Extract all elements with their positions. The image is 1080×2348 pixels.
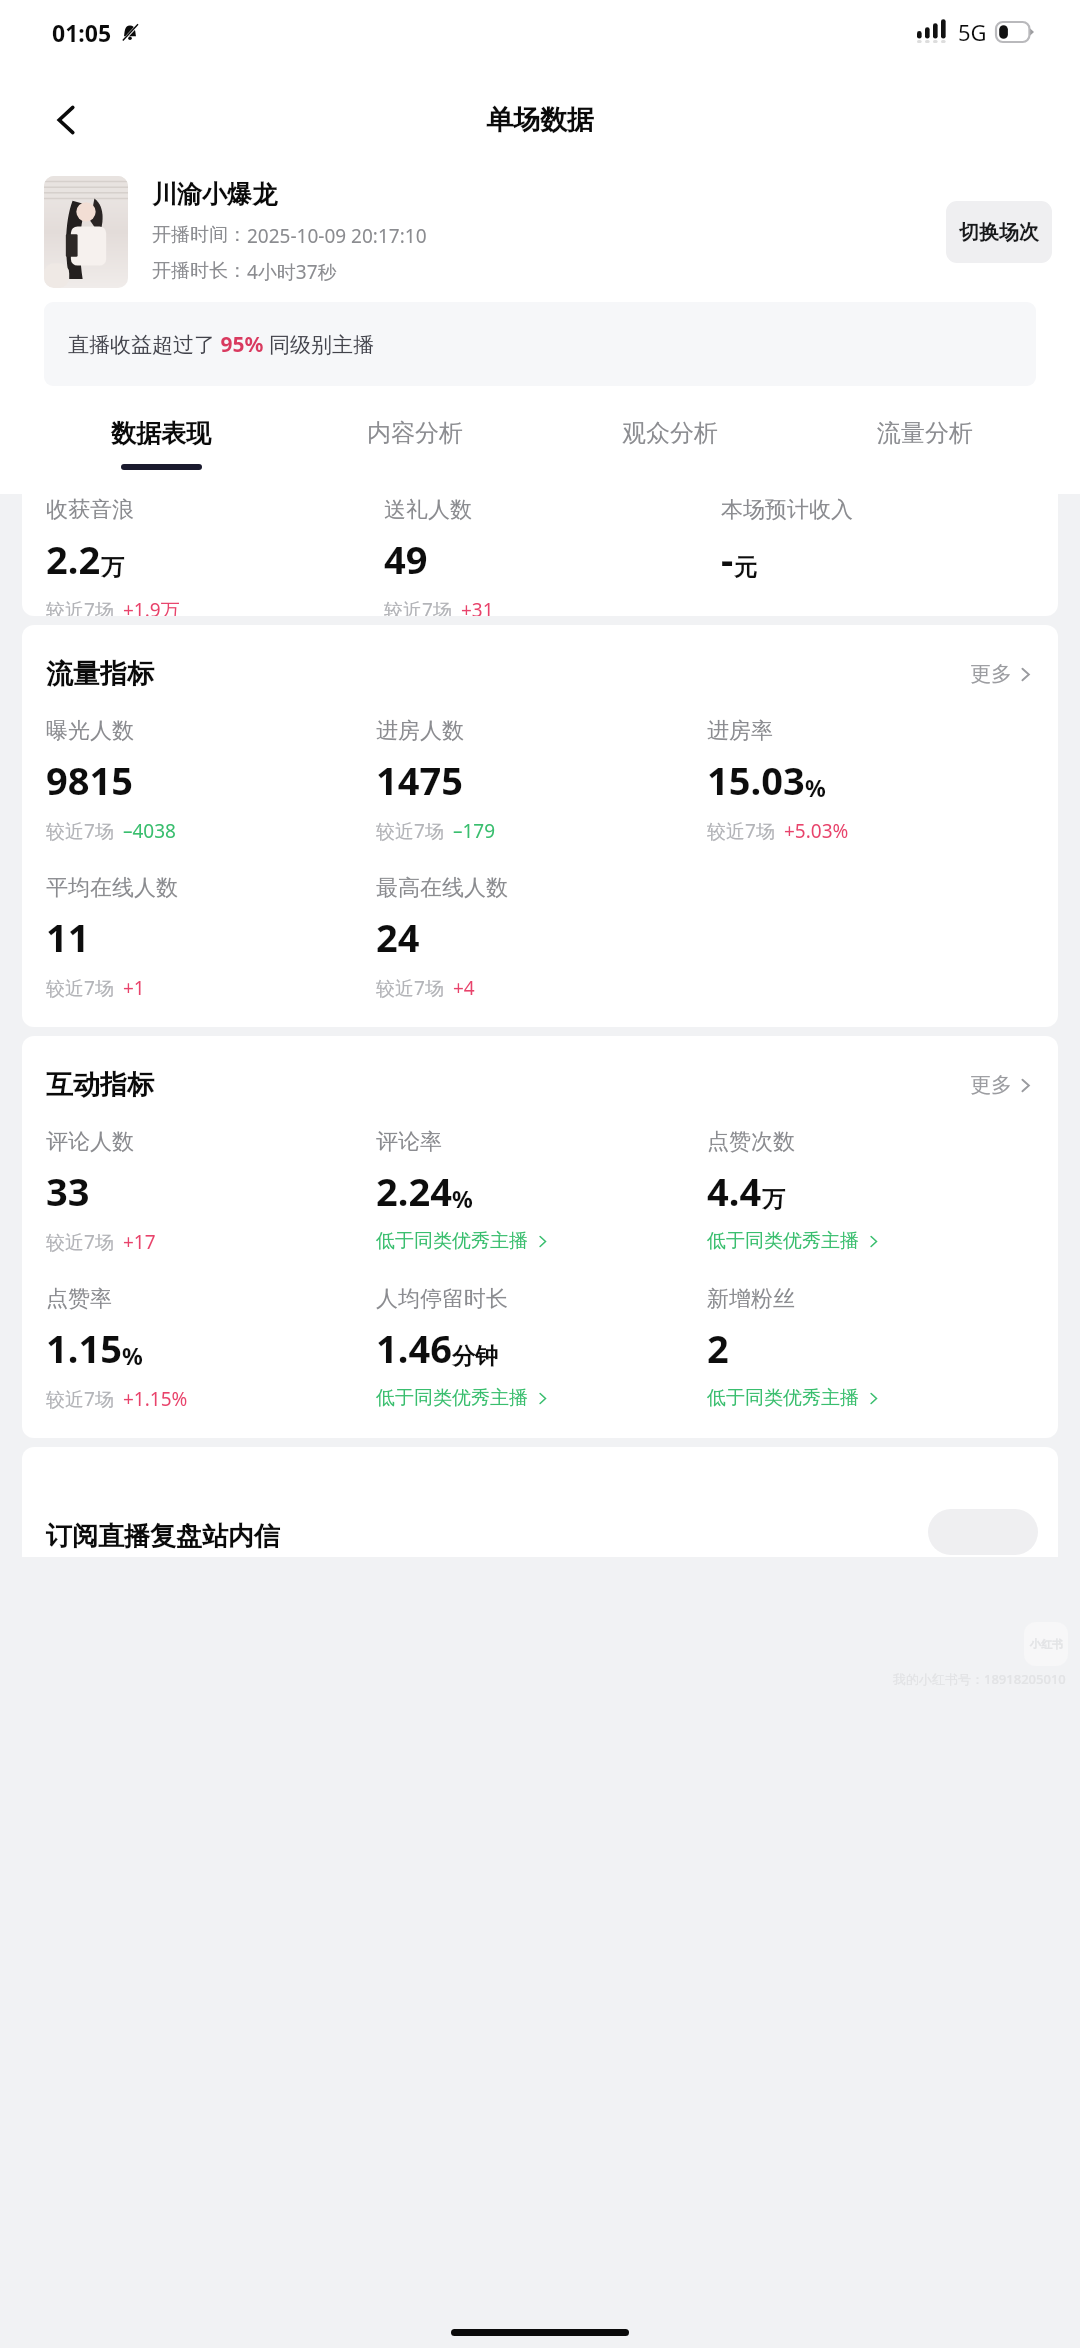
staticText: +4 bbox=[453, 975, 475, 1001]
staticText: 本场预计收入 bbox=[721, 496, 853, 524]
button[interactable]: Avatar bbox=[44, 176, 128, 288]
staticText: 较近7场 bbox=[384, 597, 452, 616]
button[interactable]: 本场预计收入 bbox=[721, 496, 1058, 616]
staticText: 较近7场 bbox=[46, 818, 114, 844]
staticText: +1.9万 bbox=[123, 597, 180, 616]
staticText: +5.03% bbox=[784, 818, 849, 844]
staticText: 点赞次数 bbox=[707, 1128, 795, 1156]
staticText: 评论率 bbox=[376, 1128, 442, 1156]
staticText: +31 bbox=[461, 597, 494, 616]
staticText: 川渝小爆龙 bbox=[152, 179, 277, 210]
staticText: 2.2 bbox=[46, 533, 101, 585]
staticText: 观众分析 bbox=[622, 418, 718, 448]
staticText: 5G bbox=[958, 17, 987, 47]
staticText: 内容分析 bbox=[367, 418, 463, 448]
button[interactable]: 切换场次 bbox=[946, 201, 1052, 263]
staticText: 49 bbox=[384, 533, 428, 585]
staticText: 4.4 bbox=[707, 1165, 762, 1217]
button[interactable]: 最高在线人数 bbox=[376, 874, 707, 1001]
button[interactable]: 进房率 bbox=[707, 717, 1038, 844]
staticText: +1 bbox=[123, 975, 145, 1001]
button[interactable]: 流量分析 bbox=[797, 410, 1052, 494]
staticText: - bbox=[721, 533, 734, 585]
staticText: 95% bbox=[215, 330, 269, 359]
button[interactable]: 点赞率 bbox=[46, 1285, 376, 1412]
staticText: 1475 bbox=[376, 754, 463, 806]
staticText: 较近7场 bbox=[376, 975, 444, 1001]
staticText: 较近7场 bbox=[376, 818, 444, 844]
staticText: 1.15 bbox=[46, 1322, 122, 1374]
staticText: 11 bbox=[46, 911, 90, 963]
staticText: 小红书 bbox=[1030, 1637, 1063, 1651]
staticText: 4小时37秒 bbox=[247, 259, 337, 285]
button[interactable]: 评论率 bbox=[376, 1128, 707, 1253]
staticText: 平均在线人数 bbox=[46, 874, 178, 902]
staticText: 进房率 bbox=[707, 717, 773, 745]
staticText: 15.03 bbox=[707, 754, 805, 806]
staticText: 互动指标 bbox=[46, 1068, 154, 1102]
staticText: 流量分析 bbox=[877, 418, 973, 448]
button[interactable]: 进房人数 bbox=[376, 717, 707, 844]
staticText: 1.46 bbox=[376, 1322, 452, 1374]
button[interactable]: 平均在线人数 bbox=[46, 874, 376, 1001]
staticText: 元 bbox=[734, 553, 757, 582]
staticText: 较近7场 bbox=[46, 597, 114, 616]
staticText: 01:05 bbox=[52, 17, 112, 48]
staticText: 2 bbox=[707, 1322, 729, 1374]
staticText: 9815 bbox=[46, 754, 133, 806]
staticText: 点赞率 bbox=[46, 1285, 112, 1313]
staticText: 开播时间： bbox=[152, 223, 247, 247]
staticText: % bbox=[122, 1340, 143, 1371]
staticText: 较近7场 bbox=[46, 1386, 114, 1412]
button[interactable]: 人均停留时长 bbox=[376, 1285, 707, 1410]
button[interactable]: 送礼人数 bbox=[384, 496, 721, 616]
staticText: –179 bbox=[453, 818, 496, 844]
staticText: 同级别主播 bbox=[269, 332, 374, 358]
staticText: 较近7场 bbox=[707, 818, 775, 844]
staticText: 万 bbox=[101, 553, 124, 582]
staticText: 流量指标 bbox=[46, 657, 154, 691]
staticText: 较近7场 bbox=[46, 975, 114, 1001]
button[interactable]: 收获音浪 bbox=[46, 496, 384, 616]
staticText: 较近7场 bbox=[46, 1229, 114, 1255]
staticText: 低于同类优秀主播 bbox=[707, 1386, 859, 1410]
button[interactable]: 点赞次数 bbox=[707, 1128, 1038, 1253]
staticText: +1.15% bbox=[123, 1386, 188, 1412]
button[interactable]: 内容分析 bbox=[288, 410, 542, 494]
button[interactable]: 评论人数 bbox=[46, 1128, 376, 1255]
button[interactable]: 更多 bbox=[966, 655, 1038, 693]
staticText: 曝光人数 bbox=[46, 717, 134, 745]
staticText: 订阅直播复盘站内信 bbox=[46, 1520, 280, 1553]
button[interactable]: 新增粉丝 bbox=[707, 1285, 1038, 1410]
staticText: 数据表现 bbox=[111, 418, 211, 449]
staticText: 评论人数 bbox=[46, 1128, 134, 1156]
staticText: 我的小红书号：18918205010 bbox=[893, 1670, 1066, 1688]
staticText: 开播时长： bbox=[152, 259, 247, 283]
button[interactable]: 订阅直播复盘站内信 bbox=[22, 1447, 1058, 1557]
button[interactable]: 直播收益超过了 bbox=[44, 302, 1036, 386]
button[interactable]: 更多 bbox=[966, 1066, 1038, 1104]
staticText: 2.24 bbox=[376, 1165, 452, 1217]
staticText: 24 bbox=[376, 911, 420, 963]
staticText: 送礼人数 bbox=[384, 496, 472, 524]
button[interactable]: Back bbox=[34, 88, 98, 152]
button[interactable]: 曝光人数 bbox=[46, 717, 376, 844]
button[interactable]: 数据表现 bbox=[34, 410, 288, 494]
staticText: 分钟 bbox=[452, 1342, 498, 1371]
staticText: % bbox=[805, 772, 826, 803]
staticText: 低于同类优秀主播 bbox=[376, 1386, 528, 1410]
staticText: +17 bbox=[123, 1229, 156, 1255]
staticText: 更多 bbox=[970, 1072, 1012, 1098]
staticText: 最高在线人数 bbox=[376, 874, 508, 902]
staticText: 更多 bbox=[970, 661, 1012, 687]
staticText: % bbox=[452, 1183, 473, 1214]
staticText: –4038 bbox=[123, 818, 176, 844]
staticText: 2025-10-09 20:17:10 bbox=[247, 223, 427, 249]
staticText: 人均停留时长 bbox=[376, 1285, 508, 1313]
staticText: 万 bbox=[762, 1185, 785, 1214]
staticText: 33 bbox=[46, 1165, 90, 1217]
button[interactable]: 观众分析 bbox=[542, 410, 797, 494]
staticText: 收获音浪 bbox=[46, 496, 134, 524]
staticText: 单场数据 bbox=[486, 103, 594, 137]
staticText: 低于同类优秀主播 bbox=[707, 1229, 859, 1253]
